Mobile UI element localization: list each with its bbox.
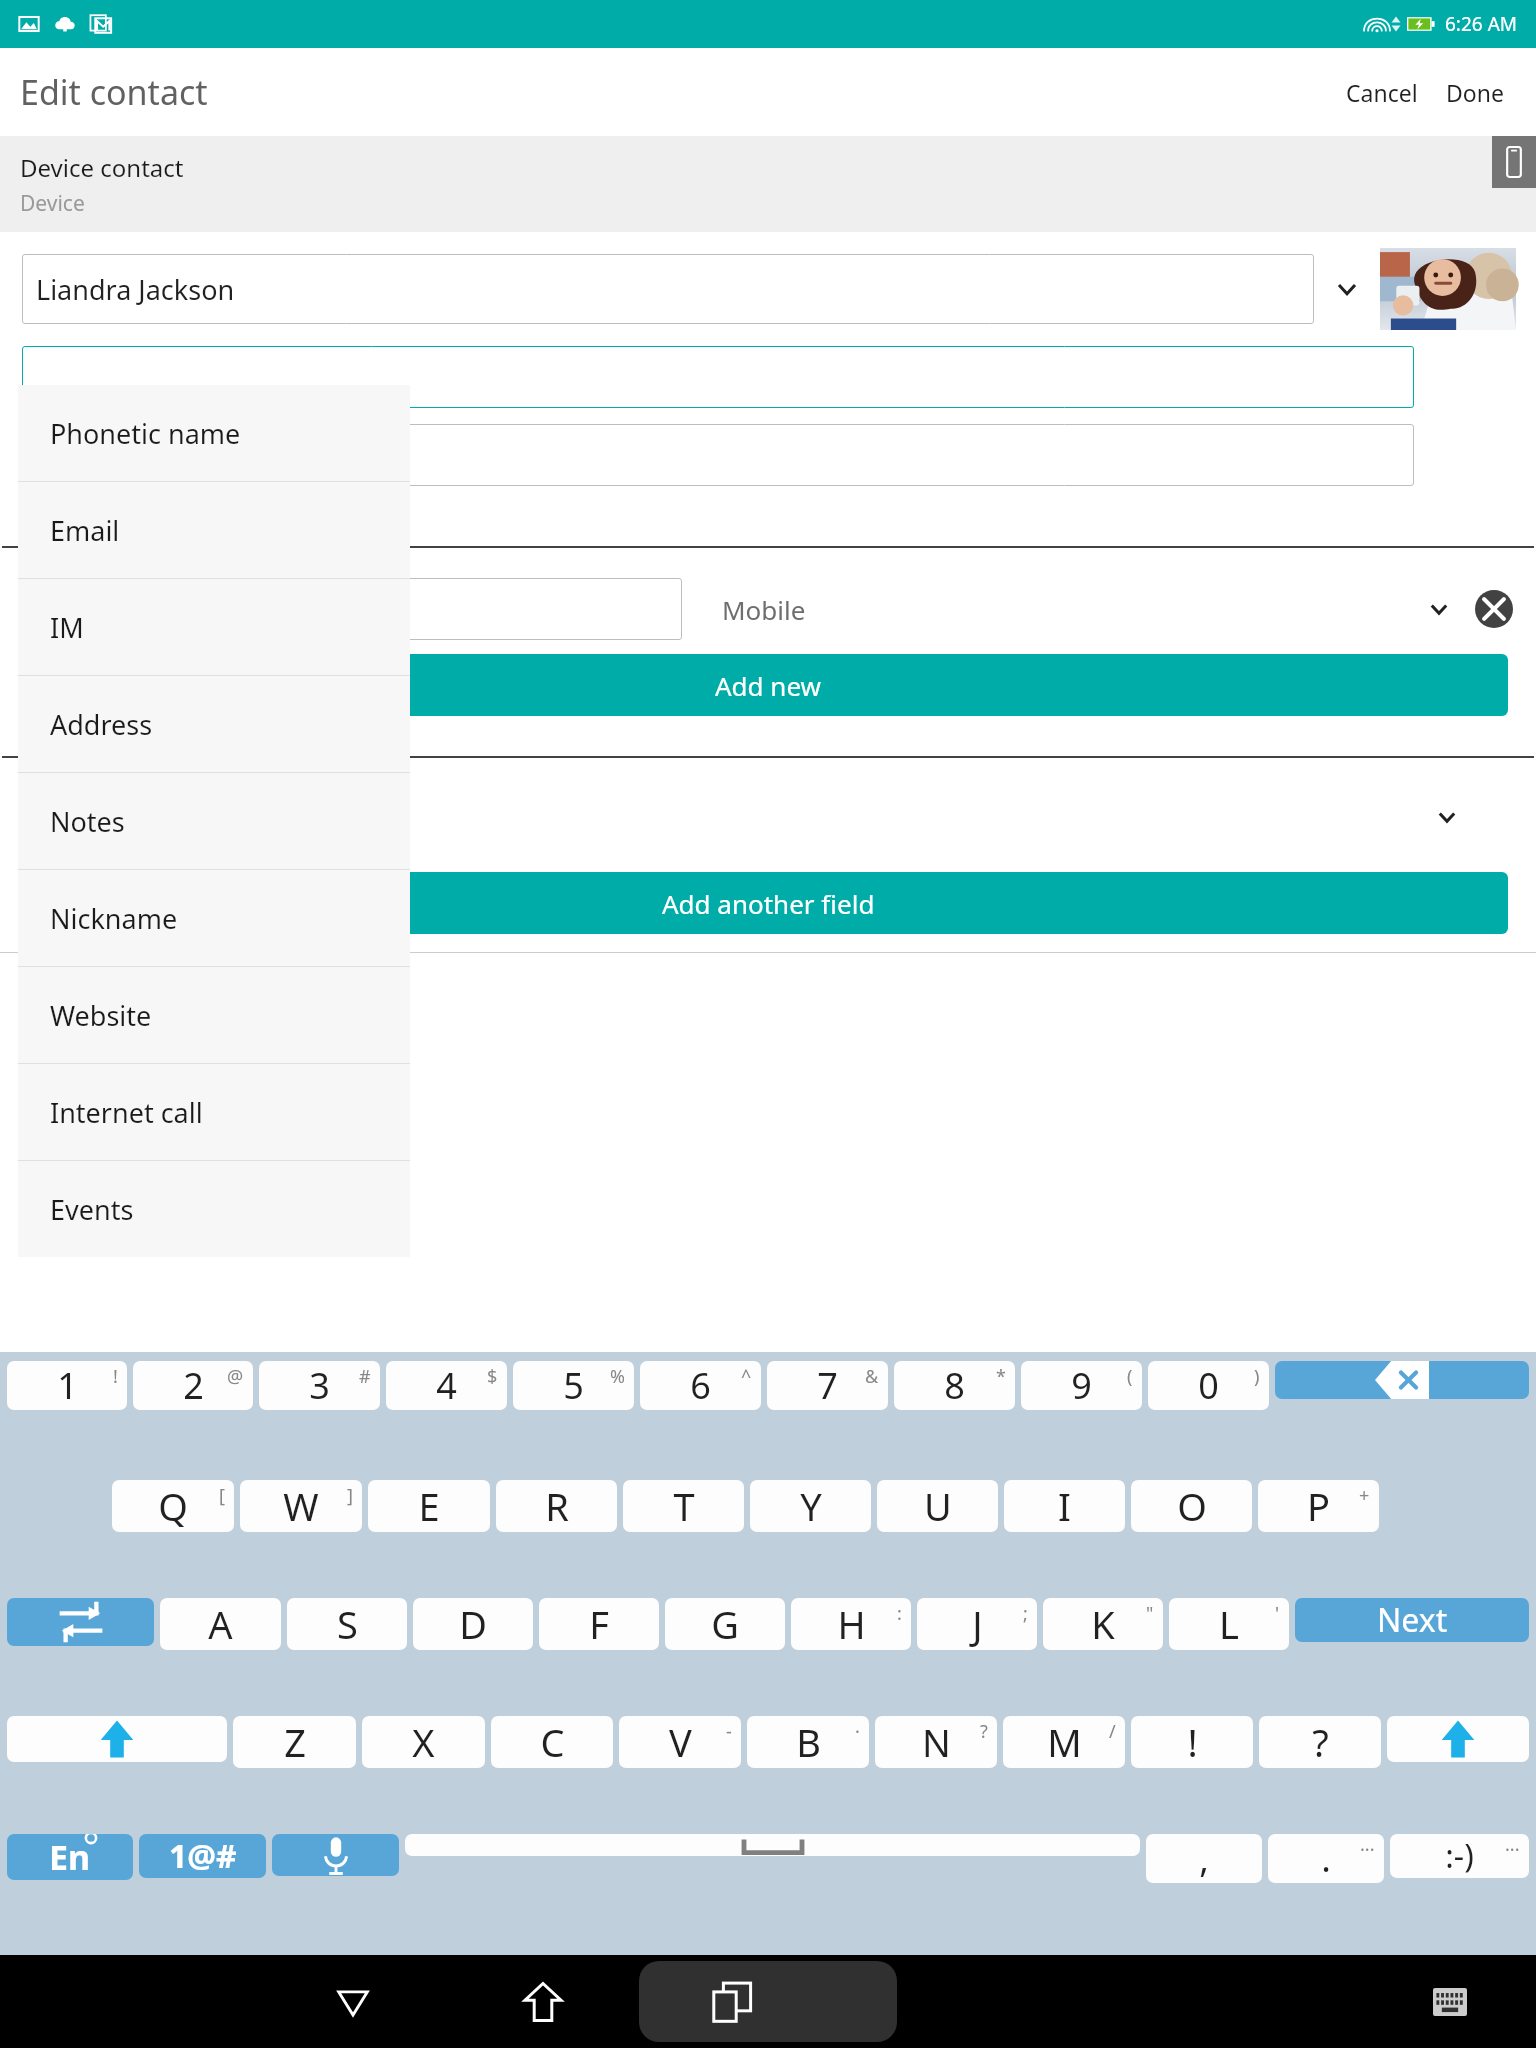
button[interactable]: M	[1003, 1716, 1125, 1768]
button[interactable]: Internet call	[18, 1064, 410, 1160]
button[interactable]: Liandra Jackson	[22, 254, 1314, 324]
button[interactable]: Space	[405, 1834, 1140, 1856]
button[interactable]: C	[491, 1716, 613, 1768]
button[interactable]: Home	[448, 1955, 638, 2048]
button[interactable]: Mobile	[722, 578, 1536, 640]
button[interactable]: Address	[18, 676, 410, 772]
staticText: T	[673, 1480, 695, 1532]
staticText: P	[1307, 1480, 1330, 1532]
button[interactable]: I	[1004, 1480, 1125, 1532]
staticText: E	[418, 1480, 440, 1532]
button[interactable]: Add another field	[28, 872, 1508, 934]
button[interactable]: Contact photo	[1380, 248, 1516, 330]
button[interactable]: J	[917, 1598, 1037, 1650]
button[interactable]: N	[875, 1716, 997, 1768]
staticText: *	[996, 1364, 1006, 1389]
button[interactable]: U	[877, 1480, 998, 1532]
staticText: )	[1254, 1364, 1260, 1389]
button[interactable]: D	[413, 1598, 533, 1650]
button[interactable]: Remove phone	[1474, 589, 1514, 629]
staticText: Add new	[715, 668, 822, 703]
button[interactable]: Website	[18, 967, 410, 1063]
button[interactable]: 5	[513, 1361, 634, 1410]
staticText: [	[219, 1483, 225, 1508]
staticText: ?	[1312, 1716, 1329, 1768]
button[interactable]: Tab	[7, 1598, 154, 1646]
button[interactable]: E	[368, 1480, 490, 1532]
staticText: $	[487, 1364, 498, 1389]
button[interactable]: Favorites, VIP	[0, 786, 1536, 848]
button[interactable]: Phonetic name	[18, 385, 410, 481]
button[interactable]: 0	[1148, 1361, 1269, 1410]
button[interactable]: Voice input	[272, 1834, 399, 1876]
button[interactable]: 8	[894, 1361, 1015, 1410]
staticText: M	[1047, 1716, 1082, 1768]
button[interactable]: Y	[750, 1480, 871, 1532]
button[interactable]: Cancel	[1336, 69, 1428, 116]
button[interactable]: Notes	[18, 773, 410, 869]
button[interactable]: Device contact	[0, 136, 1536, 232]
button[interactable]: T	[623, 1480, 744, 1532]
button[interactable]: Expand name	[1314, 248, 1380, 330]
button[interactable]: Backspace	[1275, 1361, 1529, 1399]
staticText: Events	[50, 1191, 134, 1228]
button[interactable]: En	[7, 1834, 133, 1880]
button[interactable]: !	[1131, 1716, 1253, 1768]
button[interactable]: 9	[1021, 1361, 1142, 1410]
button[interactable]: V	[619, 1716, 741, 1768]
button[interactable]	[22, 424, 1414, 486]
staticText: !	[1187, 1716, 1198, 1768]
button[interactable]: P	[1258, 1480, 1379, 1532]
button[interactable]: S	[287, 1598, 407, 1650]
button[interactable]: X	[362, 1716, 485, 1768]
button[interactable]: Z	[233, 1716, 356, 1768]
button[interactable]: B	[747, 1716, 869, 1768]
button[interactable]: G	[665, 1598, 785, 1650]
staticText: C	[540, 1716, 565, 1768]
button[interactable]: R	[496, 1480, 617, 1532]
button[interactable]: Shift	[7, 1716, 227, 1762]
button[interactable]: ,	[1146, 1834, 1262, 1883]
button[interactable]: W	[240, 1480, 362, 1532]
button[interactable]: 3	[259, 1361, 380, 1410]
staticText: Cancel	[1346, 77, 1418, 108]
button[interactable]: Q	[112, 1480, 234, 1532]
button[interactable]: Email	[18, 482, 410, 578]
staticText: N	[922, 1716, 951, 1768]
button[interactable]: 1@#	[139, 1834, 266, 1878]
button[interactable]: Events	[18, 1161, 410, 1257]
button[interactable]: Nickname	[18, 870, 410, 966]
staticText: 7	[817, 1361, 838, 1410]
button[interactable]: H	[791, 1598, 911, 1650]
button[interactable]: Add new	[28, 654, 1508, 716]
button[interactable]: A	[160, 1598, 281, 1650]
staticText: 3	[309, 1361, 330, 1410]
button[interactable]: Device account	[1492, 136, 1536, 188]
button[interactable]	[22, 578, 682, 640]
button[interactable]: Done	[1436, 69, 1514, 116]
button[interactable]: L	[1169, 1598, 1289, 1650]
staticText: &	[865, 1364, 879, 1389]
button[interactable]: K	[1043, 1598, 1163, 1650]
button[interactable]: IM	[18, 579, 410, 675]
button[interactable]: 6	[640, 1361, 761, 1410]
button[interactable]: ?	[1259, 1716, 1381, 1768]
button[interactable]: Recent apps	[638, 1955, 828, 2048]
button[interactable]: :-)	[1390, 1834, 1529, 1878]
button[interactable]: 1	[7, 1361, 127, 1410]
button[interactable]: Back	[258, 1955, 448, 2048]
button[interactable]: 4	[386, 1361, 507, 1410]
staticText: Z	[284, 1716, 306, 1768]
button[interactable]: 2	[133, 1361, 253, 1410]
staticText: @	[227, 1364, 244, 1389]
button[interactable]: O	[1131, 1480, 1252, 1532]
button[interactable]: .	[1268, 1834, 1384, 1883]
button[interactable]: 7	[767, 1361, 888, 1410]
button[interactable]: F	[539, 1598, 659, 1650]
button[interactable]: Shift	[1387, 1716, 1529, 1762]
staticText: 4	[436, 1361, 457, 1410]
button[interactable]	[22, 346, 1414, 408]
button[interactable]: Next	[1295, 1598, 1529, 1642]
button[interactable]: Keyboard	[1363, 1955, 1536, 2048]
staticText: Notes	[50, 803, 125, 840]
